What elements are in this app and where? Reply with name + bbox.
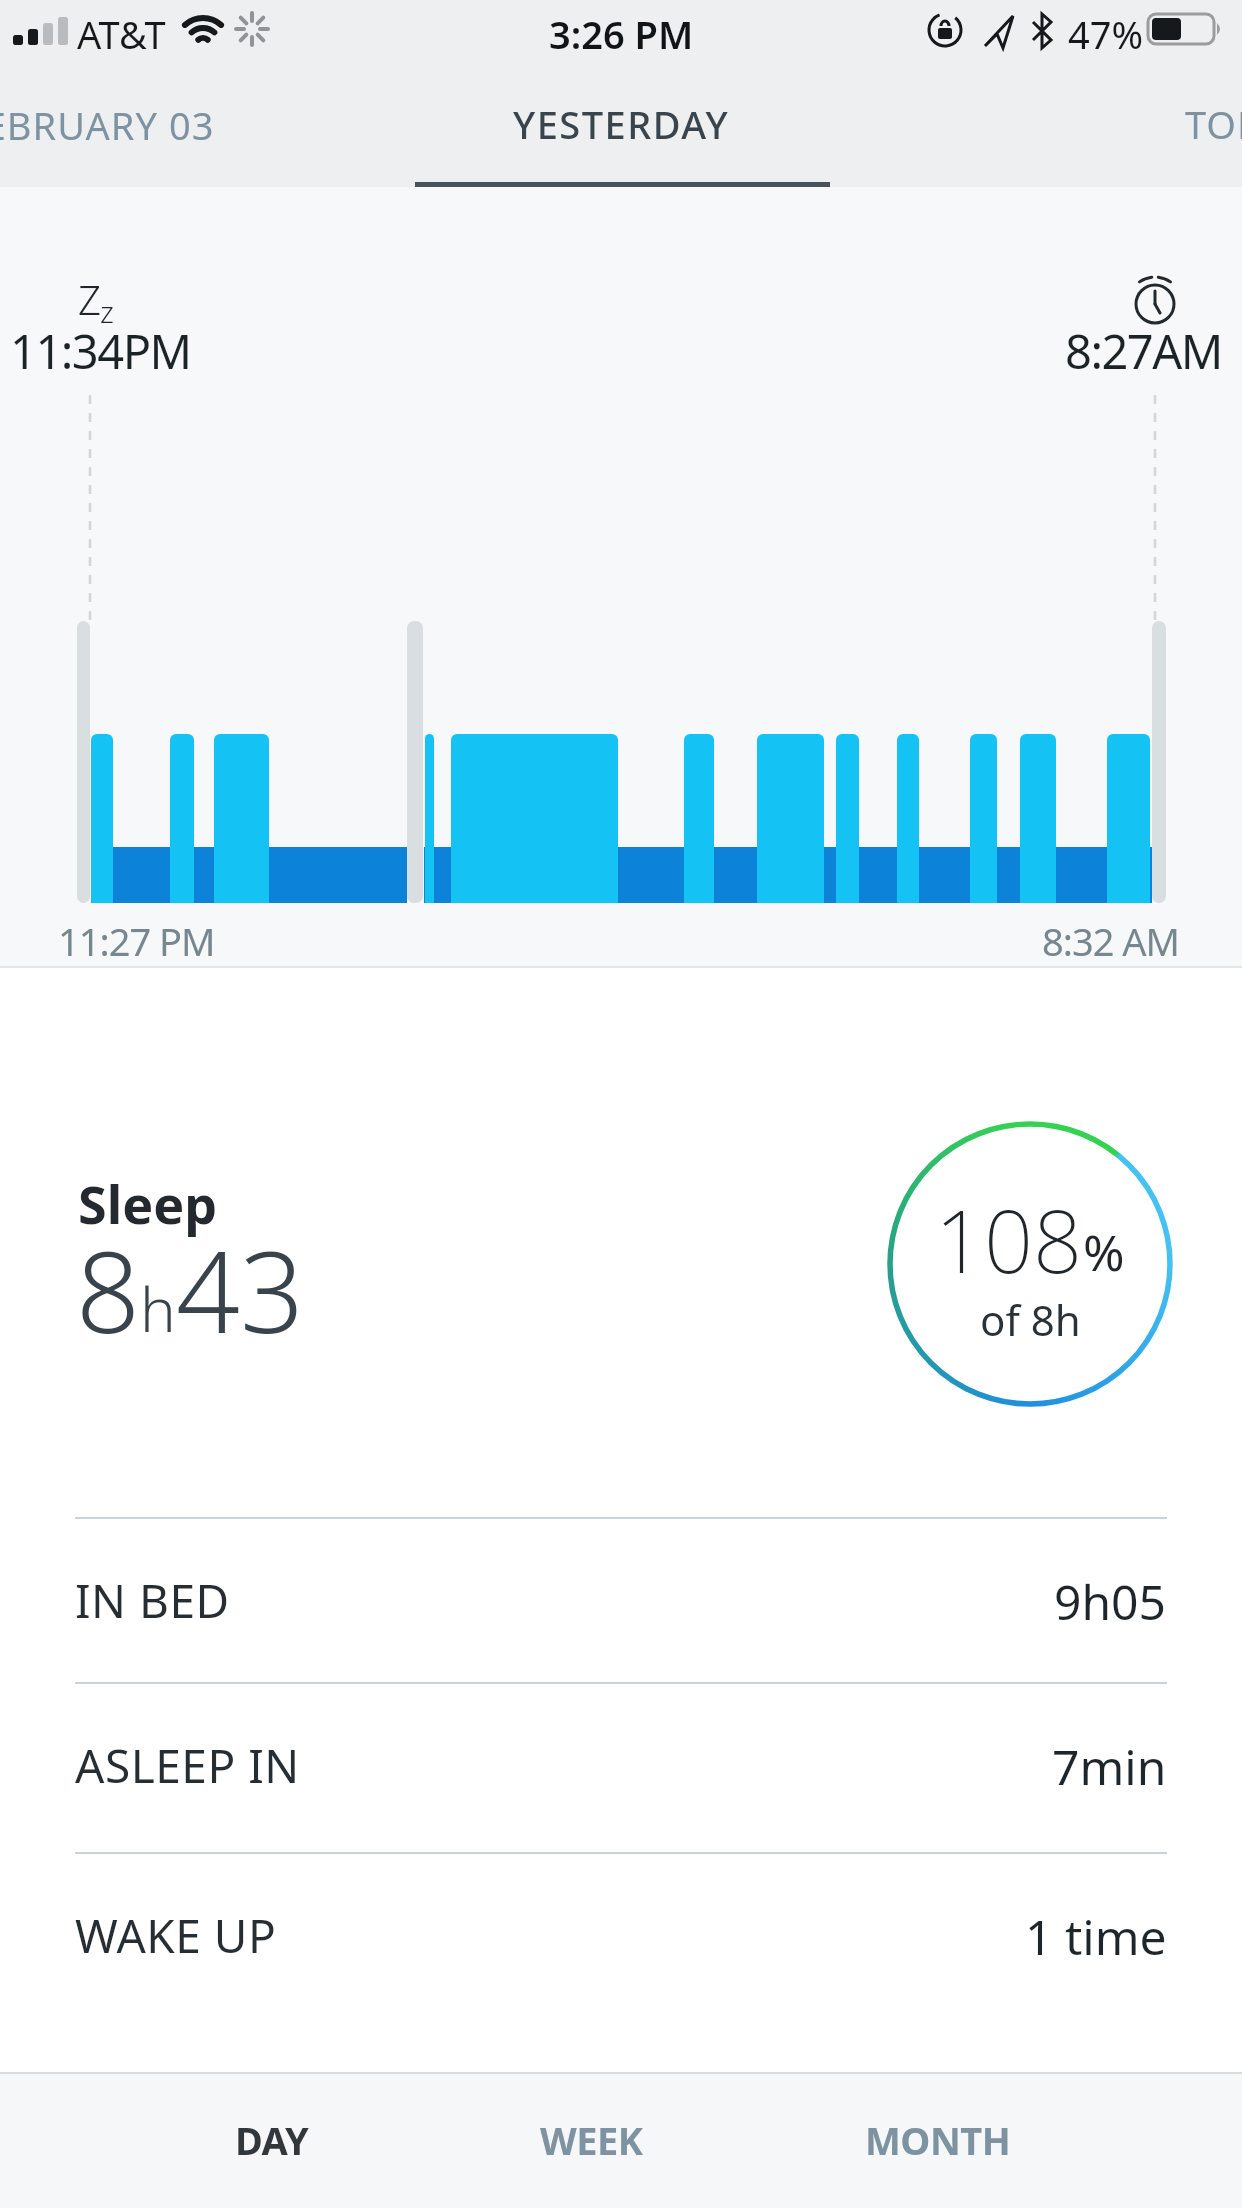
staticText: WAKE UP [75,1904,277,1964]
staticText: 1 time [1025,1904,1167,1964]
button[interactable]: MONTH [828,2072,1048,2208]
button[interactable]: ASLEEP IN [75,1734,1167,1794]
staticText: 3:26 PM [549,8,694,60]
staticText: h [140,1268,176,1350]
staticText: z [100,291,114,332]
staticText: MONTH [865,2114,1011,2166]
staticText: 8:27AM [1065,319,1222,383]
staticText: 11:34PM [10,319,191,383]
staticText: 11:27 PM [58,915,215,967]
button[interactable]: DAY [162,2072,382,2208]
staticText: ASLEEP IN [75,1734,300,1794]
staticText: TODAY [1185,98,1242,150]
staticText: WEEK [540,2114,643,2166]
staticText: 9h05 [1054,1569,1167,1629]
staticText: 7min [1052,1734,1167,1794]
staticText: Z [78,272,101,326]
button[interactable]: IN BED [75,1569,1167,1629]
staticText: FEBRUARY 03 [0,99,215,151]
staticText: of 8h [980,1291,1081,1348]
staticText: 47% [1068,8,1144,60]
staticText: IN BED [75,1569,230,1629]
staticText: 43 [176,1213,304,1366]
staticText: 8 [76,1213,140,1366]
button[interactable]: WEEK [481,2072,701,2208]
staticText: % [1083,1218,1125,1286]
button[interactable]: TODAY [1185,98,1242,150]
staticText: 8:32 AM [1042,915,1180,967]
button[interactable]: WAKE UP [75,1904,1167,1964]
staticText: YESTERDAY [513,98,730,150]
staticText: 108 [935,1181,1083,1298]
button[interactable]: YESTERDAY [513,98,730,150]
button[interactable]: FEBRUARY 03 [0,99,215,151]
staticText: AT&T [77,8,166,60]
staticText: Sleep [78,1168,218,1239]
staticText: DAY [235,2114,309,2166]
